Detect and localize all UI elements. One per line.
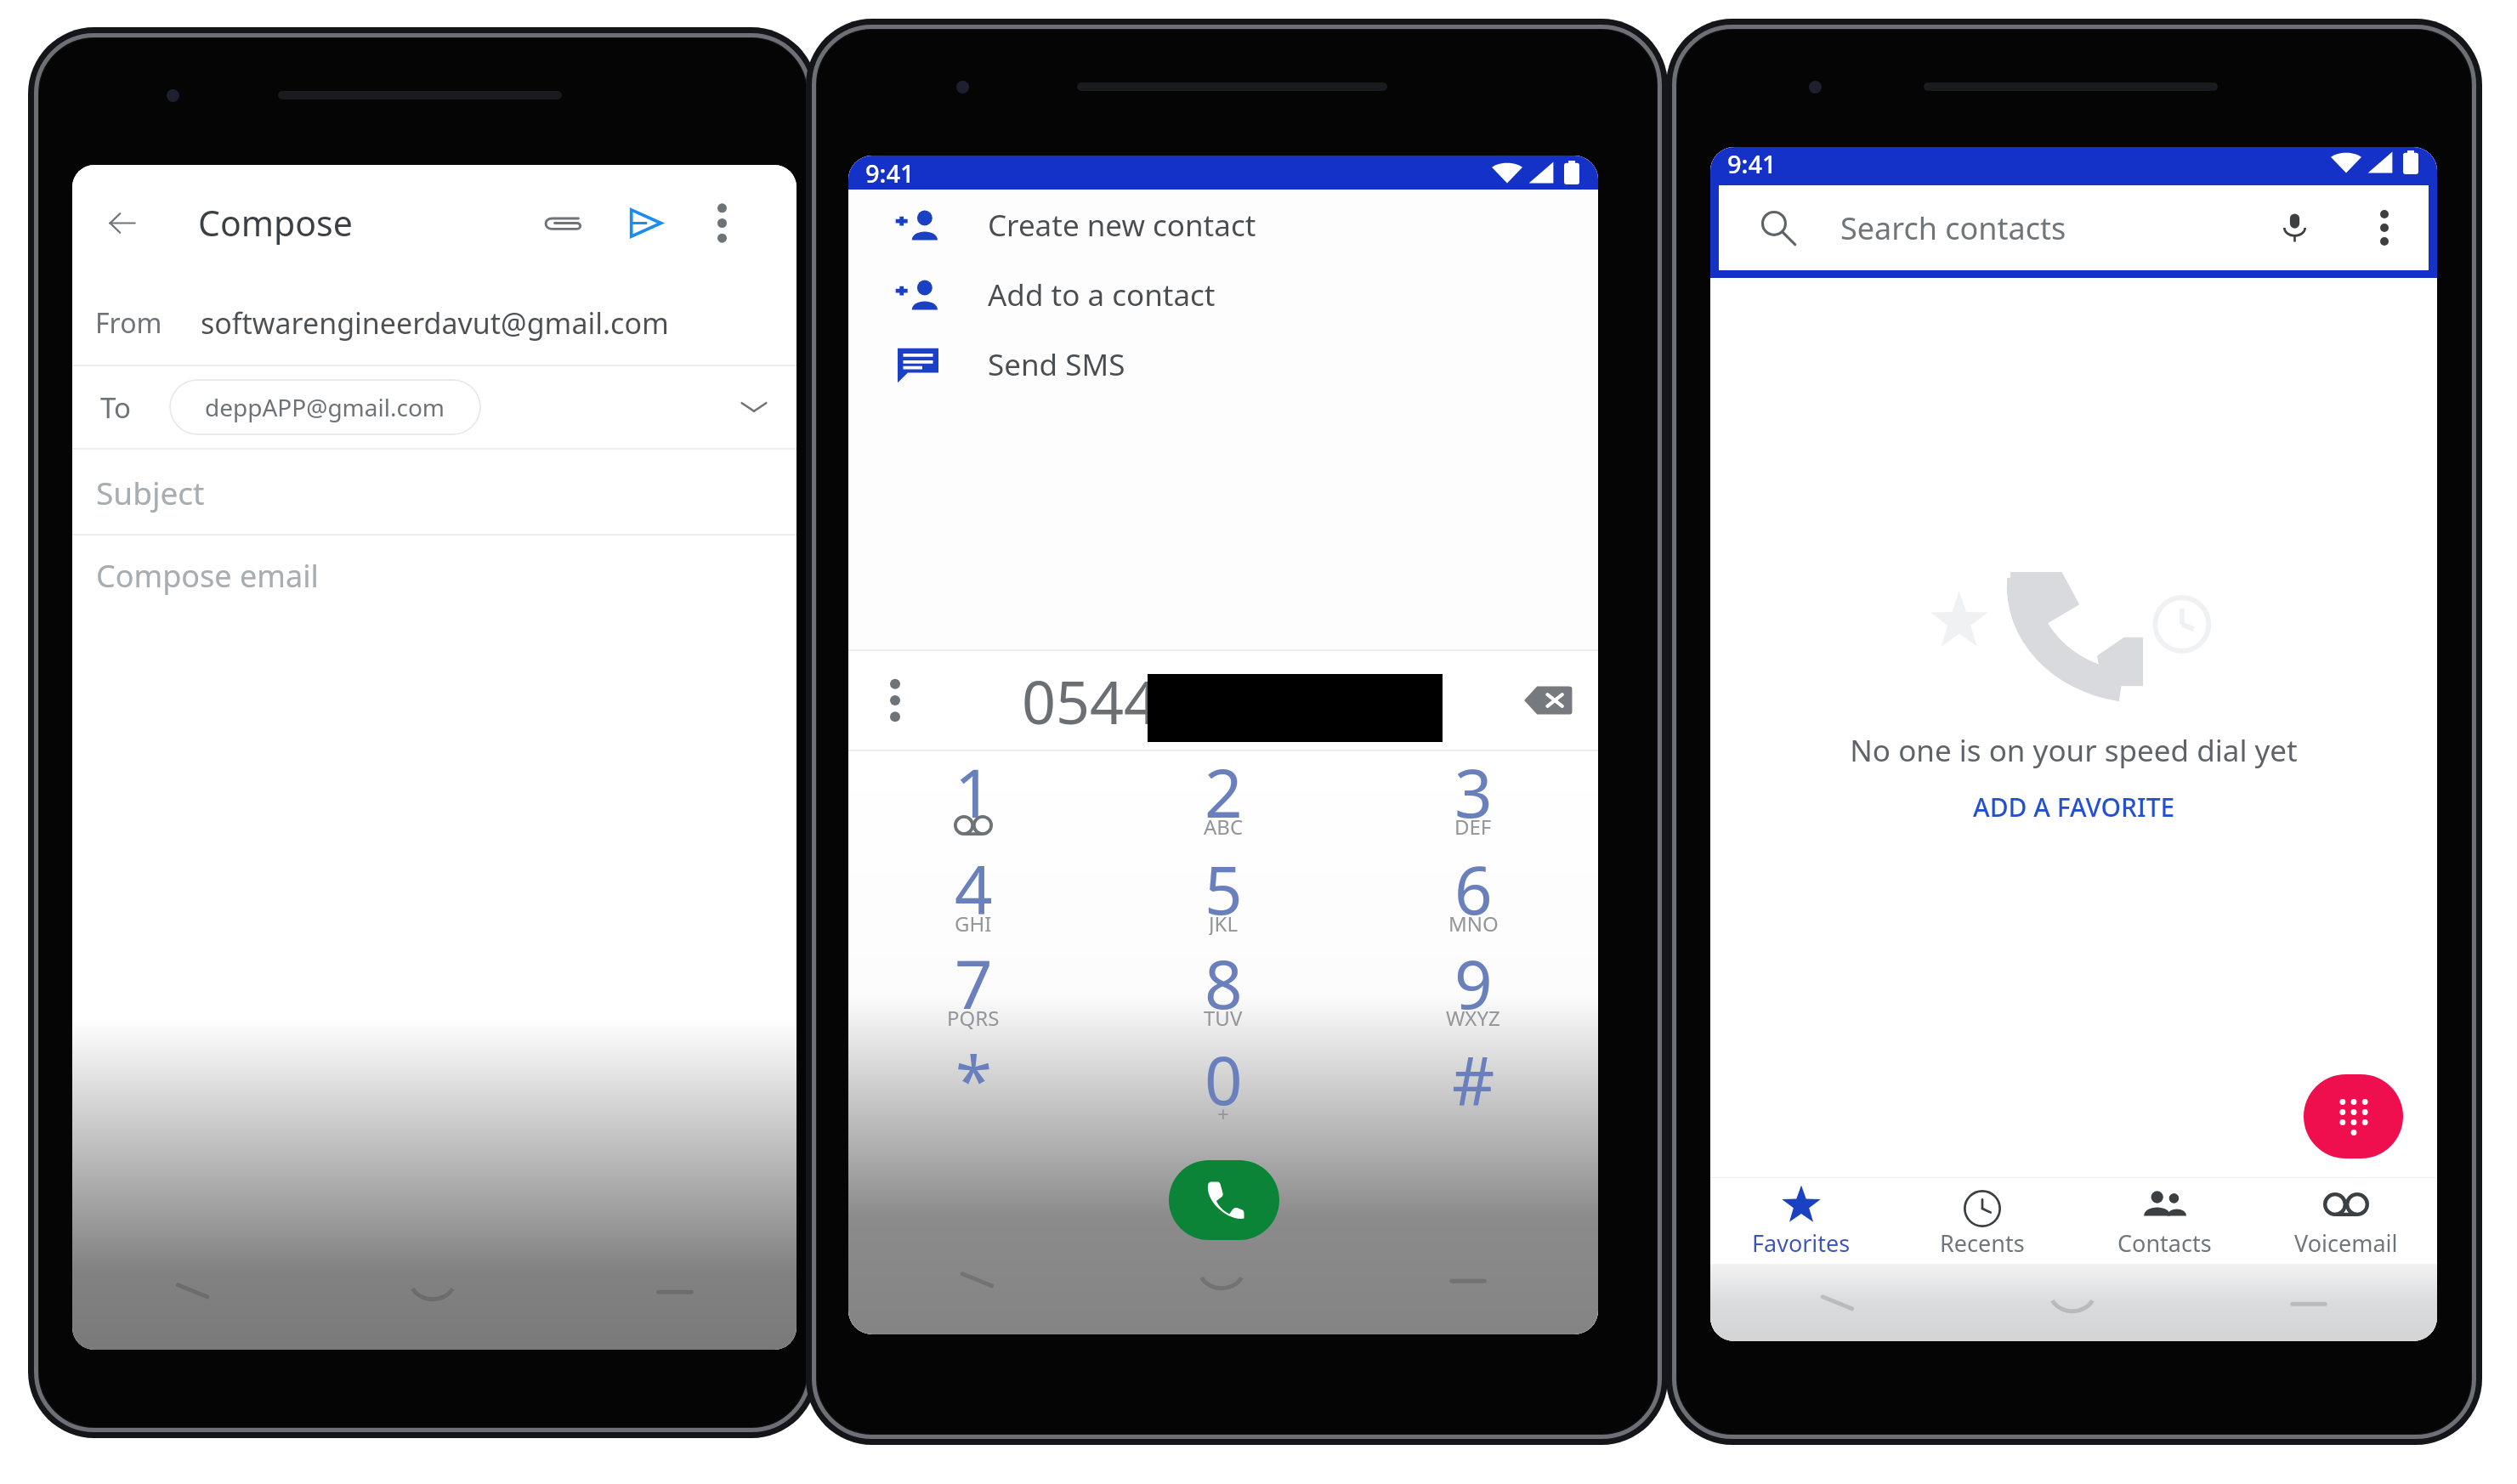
staticText: deppAPP@gmail.com [205, 391, 445, 423]
button[interactable]: 0 [1098, 1032, 1348, 1127]
staticText: Contacts [2117, 1227, 2212, 1259]
staticText: Compose email [96, 555, 319, 597]
button[interactable]: 3 [1348, 745, 1598, 840]
staticText: TUV [1204, 1004, 1243, 1029]
button[interactable]: Create new contact [848, 190, 1598, 260]
staticText: softwarengineerdavut@gmail.com [201, 303, 669, 343]
button[interactable]: Search contacts [1719, 185, 2429, 270]
button[interactable]: * [848, 1032, 1098, 1127]
staticText: 1 [955, 747, 993, 837]
button[interactable]: Send SMS [848, 330, 1598, 399]
button[interactable]: Open dialpad [2304, 1074, 2403, 1158]
staticText: From [95, 304, 162, 342]
staticText: Recents [1940, 1227, 2025, 1259]
staticText: 5 [1205, 844, 1243, 934]
staticText: 3 [1454, 747, 1493, 837]
staticText: No one is on your speed dial yet [1850, 730, 2298, 771]
button[interactable]: 4 [848, 841, 1098, 937]
button[interactable]: 5 [1098, 841, 1348, 937]
button[interactable]: Subject [72, 450, 796, 534]
staticText: WXYZ [1446, 1004, 1500, 1029]
button[interactable]: Compose email [72, 535, 796, 616]
button[interactable]: 8 [1098, 936, 1348, 1031]
button[interactable]: More options [691, 192, 752, 253]
button[interactable]: Voice search [2263, 196, 2326, 259]
button[interactable]: 2 [1098, 745, 1348, 840]
staticText: 2 [1205, 747, 1243, 837]
staticText: GHI [955, 909, 992, 935]
button[interactable]: 6 [1348, 841, 1598, 937]
staticText: 7 [955, 938, 993, 1028]
staticText: 0544 [1022, 660, 1159, 741]
button[interactable]: # [1348, 1032, 1598, 1127]
button[interactable]: Attach file [526, 187, 598, 258]
button[interactable]: Contacts [2073, 1178, 2255, 1264]
button[interactable]: Navigate back [86, 187, 157, 258]
staticText: Create new contact [988, 205, 1256, 246]
button[interactable]: 7 [848, 936, 1098, 1031]
staticText: 0 [1205, 1034, 1243, 1124]
button[interactable]: Dialer options [848, 651, 942, 750]
button[interactable]: Show more recipients [723, 377, 785, 438]
button[interactable]: 1 [848, 745, 1098, 840]
staticText: MNO [1448, 909, 1499, 935]
button[interactable]: 9 [1348, 936, 1598, 1031]
button[interactable]: Favorites [1710, 1178, 1891, 1264]
button[interactable]: Send [609, 187, 681, 258]
staticText: To [100, 388, 132, 427]
staticText: 4 [955, 844, 993, 934]
staticText: Subject [96, 471, 205, 513]
button[interactable]: Call [1169, 1160, 1279, 1240]
button[interactable]: More options [2358, 201, 2411, 254]
staticText: # [1452, 1034, 1495, 1124]
staticText: PQRS [947, 1004, 1000, 1029]
staticText: DEF [1454, 813, 1492, 838]
staticText: ABC [1204, 813, 1244, 838]
staticText: ADD A FAVORITE [1973, 790, 2175, 824]
staticText: Voicemail [2294, 1227, 2398, 1259]
button[interactable]: deppAPP@gmail.com [169, 379, 481, 435]
button[interactable]: Recents [1891, 1178, 2073, 1264]
staticText: 9:41 [865, 156, 915, 190]
staticText: + [1217, 1100, 1229, 1125]
button[interactable]: Add to a contact [848, 260, 1598, 330]
button[interactable]: Backspace [1498, 651, 1598, 750]
button[interactable]: ADD A FAVORITE [1954, 783, 2194, 831]
staticText: 9 [1454, 938, 1493, 1028]
staticText: 9:41 [1727, 147, 1777, 178]
staticText: Search contacts [1840, 207, 2066, 249]
staticText: Compose [198, 199, 353, 246]
staticText: Favorites [1752, 1227, 1851, 1259]
button[interactable]: Voicemail [2255, 1178, 2437, 1264]
staticText: 8 [1205, 938, 1243, 1028]
staticText: Send SMS [988, 344, 1125, 385]
staticText: 6 [1454, 844, 1493, 934]
staticText: * [955, 1034, 992, 1124]
staticText: Add to a contact [988, 275, 1216, 315]
staticText: JKL [1209, 909, 1238, 935]
